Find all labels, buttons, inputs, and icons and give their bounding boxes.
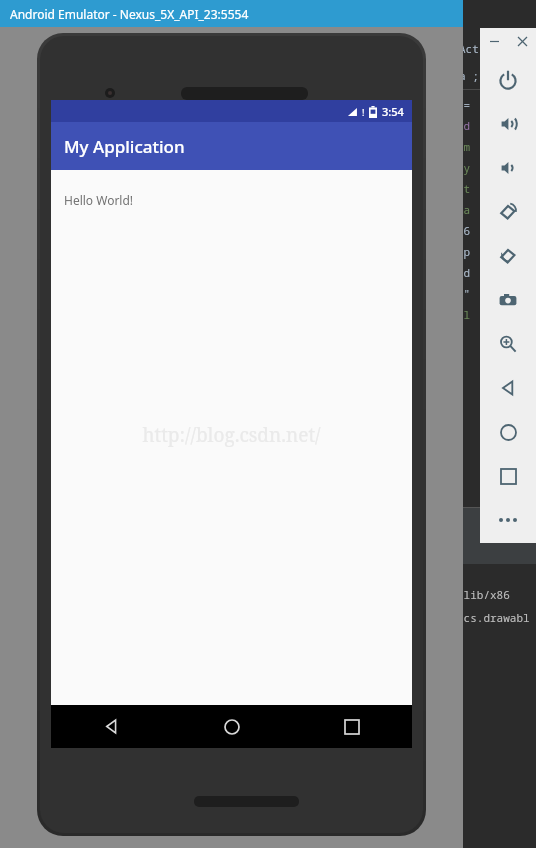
staticText: ma [457, 202, 471, 217]
staticText: 16 [457, 223, 471, 238]
button[interactable]: Home [486, 410, 530, 454]
button[interactable]: Rotate left [486, 190, 530, 234]
button[interactable]: Back [486, 366, 530, 410]
staticText: 3:54 [382, 104, 404, 119]
staticText: 6d [457, 265, 471, 280]
staticText: Android Emulator - Nexus_5X_API_23:5554 [10, 6, 249, 22]
button[interactable]: Home [172, 705, 292, 748]
button[interactable]: Rotate right [486, 234, 530, 278]
staticText: ics.drawabl [457, 610, 530, 625]
button[interactable]: Back [51, 705, 172, 748]
staticText: ! [362, 106, 365, 118]
staticText: id [457, 118, 471, 133]
staticText: pl [457, 307, 471, 322]
button[interactable]: Minimize [486, 33, 502, 49]
button[interactable]: More [486, 498, 530, 542]
staticText: p" [457, 286, 471, 301]
button[interactable]: Volume up [486, 102, 530, 146]
staticText: at [457, 181, 471, 196]
button[interactable]: Power [486, 58, 530, 102]
button[interactable]: Volume down [486, 146, 530, 190]
button[interactable]: Android Emulator - Nexus_5X_API_23:5554 [0, 0, 463, 27]
staticText: em [457, 139, 471, 154]
button[interactable]: Zoom [486, 322, 530, 366]
staticText: Act [459, 41, 479, 56]
button[interactable]: My Application [51, 122, 412, 170]
staticText: ty [457, 160, 471, 175]
staticText: http://blog.csdn.net/ [51, 422, 412, 448]
staticText: dp [457, 244, 471, 259]
staticText: Hello World! [64, 192, 134, 208]
button[interactable]: Close [514, 33, 530, 49]
staticText: a ; [459, 68, 479, 83]
button[interactable]: Recent apps [292, 705, 412, 748]
staticText: g= [457, 97, 471, 112]
button[interactable]: Recent apps [486, 454, 530, 498]
button[interactable]: Take screenshot [486, 278, 530, 322]
staticText: My Application [64, 135, 185, 158]
staticText: /lib/x86 [457, 587, 510, 602]
